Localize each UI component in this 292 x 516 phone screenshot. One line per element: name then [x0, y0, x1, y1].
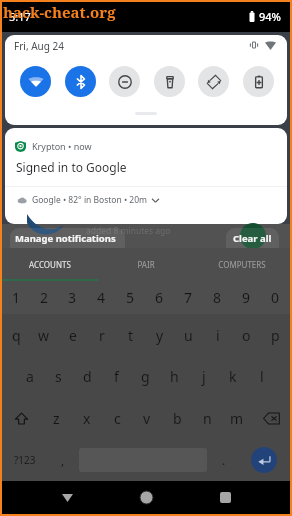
button[interactable]: v — [132, 397, 162, 439]
button[interactable]: a — [15, 356, 44, 397]
staticText: l — [260, 367, 264, 386]
button[interactable]: 0 — [261, 281, 290, 314]
staticText: p — [271, 326, 280, 345]
button[interactable]: 3 — [58, 281, 87, 314]
button[interactable]: Shift — [2, 397, 41, 439]
staticText: Google • 82° in Boston • 20m — [32, 194, 148, 206]
staticText: 7 — [184, 288, 193, 307]
staticText: f — [114, 367, 119, 386]
button[interactable]: Bluetooth — [65, 66, 96, 97]
button[interactable]: g — [131, 356, 160, 397]
button[interactable]: Krypton • now — [5, 128, 287, 224]
button[interactable]: Recents — [208, 481, 242, 514]
button[interactable]: Do not disturb — [109, 66, 140, 97]
button[interactable]: 5 — [116, 281, 145, 314]
button[interactable]: Flashlight — [154, 66, 185, 97]
staticText: i — [216, 326, 220, 345]
button[interactable]: 7 — [174, 281, 203, 314]
button[interactable]: i — [203, 314, 232, 356]
staticText: 9 — [242, 288, 251, 307]
button[interactable]: o — [232, 314, 261, 356]
button[interactable]: m — [222, 397, 252, 439]
staticText: x — [83, 409, 91, 428]
button[interactable]: x — [72, 397, 102, 439]
staticText: ACCOUNTS — [29, 259, 71, 270]
button[interactable]: j — [189, 356, 218, 397]
staticText: Manage notifications — [15, 232, 116, 245]
staticText: g — [141, 367, 150, 386]
staticText: w — [38, 326, 50, 345]
staticText: Signed in to Google — [16, 159, 127, 175]
button[interactable]: z — [41, 397, 72, 439]
button[interactable]: Battery saver — [243, 66, 274, 97]
staticText: hack-cheat.org — [3, 2, 116, 22]
staticText: t — [128, 326, 134, 345]
staticText: 4 — [97, 288, 106, 307]
staticText: Krypton • now — [32, 140, 92, 152]
button[interactable]: Back — [50, 481, 84, 514]
button[interactable]: n — [192, 397, 222, 439]
button[interactable]: PAIR — [98, 248, 194, 281]
button[interactable]: b — [162, 397, 192, 439]
button[interactable]: Manage notifications — [10, 228, 125, 248]
button[interactable]: Clear all — [226, 228, 279, 248]
staticText: 6 — [155, 288, 164, 307]
staticText: b — [173, 409, 182, 428]
button[interactable]: d — [73, 356, 102, 397]
staticText: n — [203, 409, 212, 428]
button[interactable]: f — [102, 356, 131, 397]
button[interactable]: s — [44, 356, 73, 397]
button[interactable]: h — [160, 356, 189, 397]
staticText: 3 — [68, 288, 77, 307]
staticText: . — [222, 452, 226, 468]
button[interactable]: Backspace — [252, 397, 290, 439]
button[interactable]: t — [116, 314, 145, 356]
button[interactable]: Wi-Fi — [20, 66, 51, 97]
staticText: PAIR — [137, 259, 155, 270]
button[interactable]: 6 — [145, 281, 174, 314]
staticText: y — [156, 326, 164, 345]
button[interactable]: k — [218, 356, 247, 397]
button[interactable]: w — [30, 314, 58, 356]
button[interactable]: e — [58, 314, 87, 356]
staticText: u — [184, 326, 193, 345]
staticText: 1 — [12, 288, 21, 307]
button[interactable]: l — [247, 356, 276, 397]
button[interactable]: 9 — [232, 281, 261, 314]
button[interactable]: c — [102, 397, 132, 439]
staticText: Fri, Aug 24 — [14, 39, 64, 53]
button[interactable]: r — [87, 314, 116, 356]
staticText: s — [55, 367, 62, 386]
staticText: 5 — [126, 288, 135, 307]
staticText: 94% — [259, 9, 281, 24]
staticText: q — [12, 326, 21, 345]
button[interactable]: Home — [129, 481, 163, 514]
staticText: 8 — [213, 288, 222, 307]
button[interactable]: COMPUTERS — [194, 248, 290, 281]
button[interactable]: p — [261, 314, 290, 356]
button[interactable]: Enter — [251, 447, 277, 473]
staticText: 2 — [40, 288, 49, 307]
staticText: k — [229, 367, 237, 386]
button[interactable]: Auto rotate — [198, 66, 229, 97]
button[interactable]: 8 — [203, 281, 232, 314]
button[interactable]: ?123 — [2, 439, 48, 481]
staticText: , — [61, 452, 65, 468]
staticText: o — [242, 326, 251, 345]
staticText: z — [53, 409, 60, 428]
button[interactable]: 2 — [30, 281, 58, 314]
button[interactable]: y — [145, 314, 174, 356]
button[interactable]: q — [2, 314, 30, 356]
button[interactable]: u — [174, 314, 203, 356]
button[interactable]: ACCOUNTS — [2, 248, 98, 281]
staticText: COMPUTERS — [218, 259, 266, 270]
staticText: 0 — [271, 288, 280, 307]
staticText: Clear all — [233, 232, 272, 245]
button[interactable]: 1 — [2, 281, 30, 314]
button[interactable]: 4 — [87, 281, 116, 314]
staticText: a — [26, 367, 34, 386]
staticText: ?123 — [14, 453, 36, 467]
